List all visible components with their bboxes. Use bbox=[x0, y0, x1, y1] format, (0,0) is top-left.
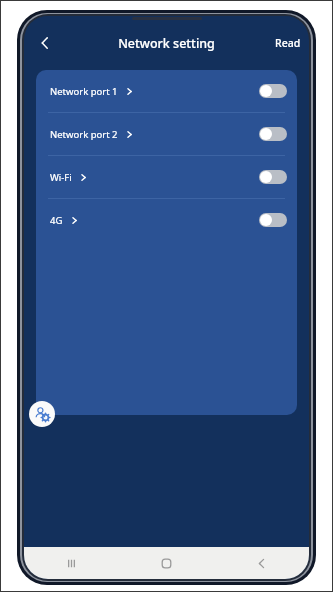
button[interactable]: Wi-Fi bbox=[36, 156, 297, 198]
button[interactable]: Home bbox=[119, 547, 214, 579]
button[interactable]: Toggle bbox=[259, 170, 287, 184]
staticText: Network setting bbox=[118, 35, 215, 52]
button[interactable]: Network port 1 bbox=[36, 70, 297, 112]
button[interactable]: 4G bbox=[36, 199, 297, 241]
button[interactable]: Network port 2 bbox=[36, 113, 297, 155]
button[interactable]: Toggle bbox=[259, 84, 287, 98]
staticText: Network port 2 bbox=[50, 128, 118, 141]
button[interactable]: Read bbox=[267, 30, 309, 56]
staticText: Read bbox=[275, 36, 301, 50]
button[interactable]: Back bbox=[214, 547, 309, 579]
staticText: Wi-Fi bbox=[50, 171, 72, 184]
staticText: 4G bbox=[50, 214, 63, 227]
staticText: Network port 1 bbox=[50, 85, 118, 98]
button[interactable]: User settings bbox=[29, 401, 55, 427]
button[interactable]: Toggle bbox=[259, 127, 287, 141]
button[interactable]: Toggle bbox=[259, 213, 287, 227]
button[interactable]: Recent apps bbox=[24, 547, 119, 579]
button[interactable]: Back bbox=[30, 28, 60, 58]
